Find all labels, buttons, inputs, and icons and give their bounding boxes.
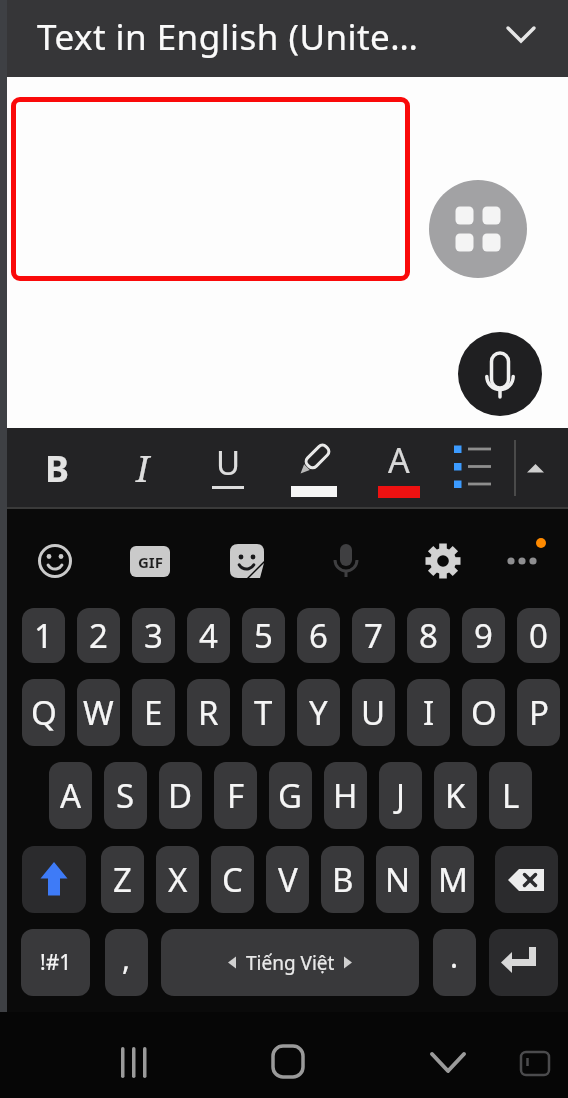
button[interactable]: GIF xyxy=(130,546,170,577)
button[interactable] xyxy=(22,846,86,913)
staticText: I xyxy=(423,690,435,735)
button[interactable] xyxy=(288,436,340,498)
button[interactable] xyxy=(512,1042,558,1084)
button[interactable]: Y xyxy=(297,679,340,746)
button[interactable] xyxy=(105,1035,161,1091)
button[interactable] xyxy=(424,542,462,580)
button[interactable]: G xyxy=(269,762,312,829)
staticText: U xyxy=(216,440,241,485)
button[interactable]: 7 xyxy=(352,608,395,663)
button[interactable] xyxy=(500,534,552,574)
staticText: 7 xyxy=(364,613,383,658)
button[interactable]: U xyxy=(352,679,395,746)
button[interactable]: V xyxy=(266,846,309,913)
button[interactable]: 0 xyxy=(517,608,560,663)
button[interactable]: T xyxy=(242,679,285,746)
staticText: 4 xyxy=(199,613,218,658)
button[interactable]: I xyxy=(118,440,168,496)
staticText: X xyxy=(168,857,188,902)
button[interactable] xyxy=(260,1035,316,1091)
staticText: A xyxy=(388,437,410,483)
button[interactable] xyxy=(489,929,558,996)
staticText: H xyxy=(333,773,358,818)
staticText: 6 xyxy=(309,613,328,658)
button[interactable]: O xyxy=(462,679,505,746)
button[interactable] xyxy=(420,1035,476,1091)
staticText: Q xyxy=(31,690,57,735)
button[interactable]: Tiếng Việt xyxy=(161,929,419,996)
button[interactable]: H xyxy=(324,762,367,829)
staticText: 1 xyxy=(34,613,53,658)
staticText: B xyxy=(45,444,69,493)
button[interactable]: I xyxy=(407,679,450,746)
button[interactable]: W xyxy=(77,679,120,746)
button[interactable]: X xyxy=(156,846,199,913)
staticText: U xyxy=(361,690,386,735)
staticText: 5 xyxy=(254,613,273,658)
staticText: M xyxy=(438,857,468,902)
button[interactable]: L xyxy=(489,762,532,829)
button[interactable]: C xyxy=(211,846,254,913)
button[interactable]: N xyxy=(376,846,419,913)
staticText: L xyxy=(502,773,520,818)
button[interactable]: K xyxy=(434,762,477,829)
staticText: GIF xyxy=(138,552,163,572)
button[interactable]: S xyxy=(104,762,147,829)
button[interactable] xyxy=(505,20,537,48)
staticText: R xyxy=(198,690,219,735)
button[interactable]: Z xyxy=(101,846,144,913)
button[interactable]: M xyxy=(431,846,474,913)
staticText: G xyxy=(278,773,303,818)
button[interactable]: 9 xyxy=(462,608,505,663)
staticText: Y xyxy=(309,690,328,735)
button[interactable]: R xyxy=(187,679,230,746)
button[interactable] xyxy=(495,846,558,913)
staticText: J xyxy=(396,773,406,818)
staticText: Z xyxy=(113,857,132,902)
button[interactable]: B xyxy=(32,440,82,496)
button[interactable]: Q xyxy=(22,679,65,746)
staticText: 9 xyxy=(474,613,493,658)
staticText: , xyxy=(122,938,131,979)
button[interactable]: U xyxy=(203,436,253,488)
button[interactable]: E xyxy=(132,679,175,746)
button[interactable] xyxy=(452,440,498,496)
staticText: Text in English (Unite… xyxy=(37,13,419,61)
button[interactable]: 5 xyxy=(242,608,285,663)
button[interactable] xyxy=(36,542,74,580)
button[interactable]: B xyxy=(321,846,364,913)
button[interactable] xyxy=(522,456,550,480)
button[interactable]: 2 xyxy=(77,608,120,663)
button[interactable]: J xyxy=(379,762,422,829)
button[interactable]: Text in English (Unite… xyxy=(0,0,568,77)
button[interactable]: 3 xyxy=(132,608,175,663)
button[interactable]: 8 xyxy=(407,608,450,663)
button[interactable] xyxy=(230,544,265,579)
button[interactable] xyxy=(458,332,542,416)
staticText: C xyxy=(222,857,243,902)
button[interactable]: 4 xyxy=(187,608,230,663)
button[interactable] xyxy=(429,180,527,278)
button[interactable]: 1 xyxy=(22,608,65,663)
button[interactable]: , xyxy=(105,929,148,996)
staticText: P xyxy=(529,690,549,735)
button[interactable] xyxy=(330,540,362,582)
button[interactable]: P xyxy=(517,679,560,746)
staticText: 2 xyxy=(89,613,108,658)
staticText: 3 xyxy=(144,613,163,658)
staticText: 0 xyxy=(529,613,548,658)
staticText: Tiếng Việt xyxy=(246,950,335,976)
button[interactable]: A xyxy=(49,762,92,829)
button[interactable]: 6 xyxy=(297,608,340,663)
staticText: D xyxy=(168,773,193,818)
staticText: K xyxy=(445,773,466,818)
button[interactable]: D xyxy=(159,762,202,829)
staticText: A xyxy=(60,773,82,818)
button[interactable]: F xyxy=(214,762,257,829)
button[interactable]: !#1 xyxy=(21,929,90,996)
staticText: F xyxy=(227,773,245,818)
button[interactable]: . xyxy=(433,929,476,996)
staticText: I xyxy=(136,444,150,493)
button[interactable]: A xyxy=(374,434,424,486)
